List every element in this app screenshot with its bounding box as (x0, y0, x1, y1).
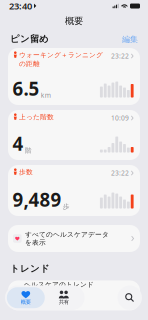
staticText: 10:09 (111, 114, 129, 122)
button[interactable]: ウォーキング＋ランニング (8, 48, 140, 105)
staticText: 23:40 (9, 0, 32, 12)
button[interactable]: 検索 (117, 285, 142, 310)
button[interactable]: 概要 (7, 287, 45, 308)
staticText: 6.5 (12, 76, 39, 101)
staticText: トレンド (10, 263, 50, 274)
staticText: km (41, 91, 51, 100)
button[interactable]: すべてのヘルスケアデータ を表示 (8, 225, 140, 252)
staticText: すべてのヘルスケアデータ を表示 (25, 230, 109, 247)
staticText: ウォーキング＋ランニング (19, 51, 103, 59)
staticText: 概要 (21, 299, 31, 305)
staticText: 編集 (122, 34, 138, 44)
staticText: ヘルスケアのトレンド (24, 280, 94, 289)
button[interactable]: 歩数 (8, 165, 140, 216)
staticText: 共有 (59, 299, 69, 305)
button[interactable]: 編集 (122, 34, 138, 45)
staticText: の距離 (19, 60, 40, 68)
button[interactable]: 上った階数 (8, 110, 140, 160)
staticText: 23:22 (111, 169, 129, 177)
staticText: 4 (12, 131, 23, 156)
staticText: 歩 (63, 202, 70, 211)
staticText: ピン留め (10, 33, 49, 45)
staticText: 23:22 (111, 52, 129, 60)
staticText: 上った階数 (19, 113, 54, 121)
staticText: 歩数 (19, 168, 33, 176)
staticText: 概要 (65, 15, 83, 27)
staticText: 階 (25, 146, 32, 155)
staticText: 9,489 (12, 187, 61, 212)
button[interactable]: 共有 (45, 287, 83, 308)
